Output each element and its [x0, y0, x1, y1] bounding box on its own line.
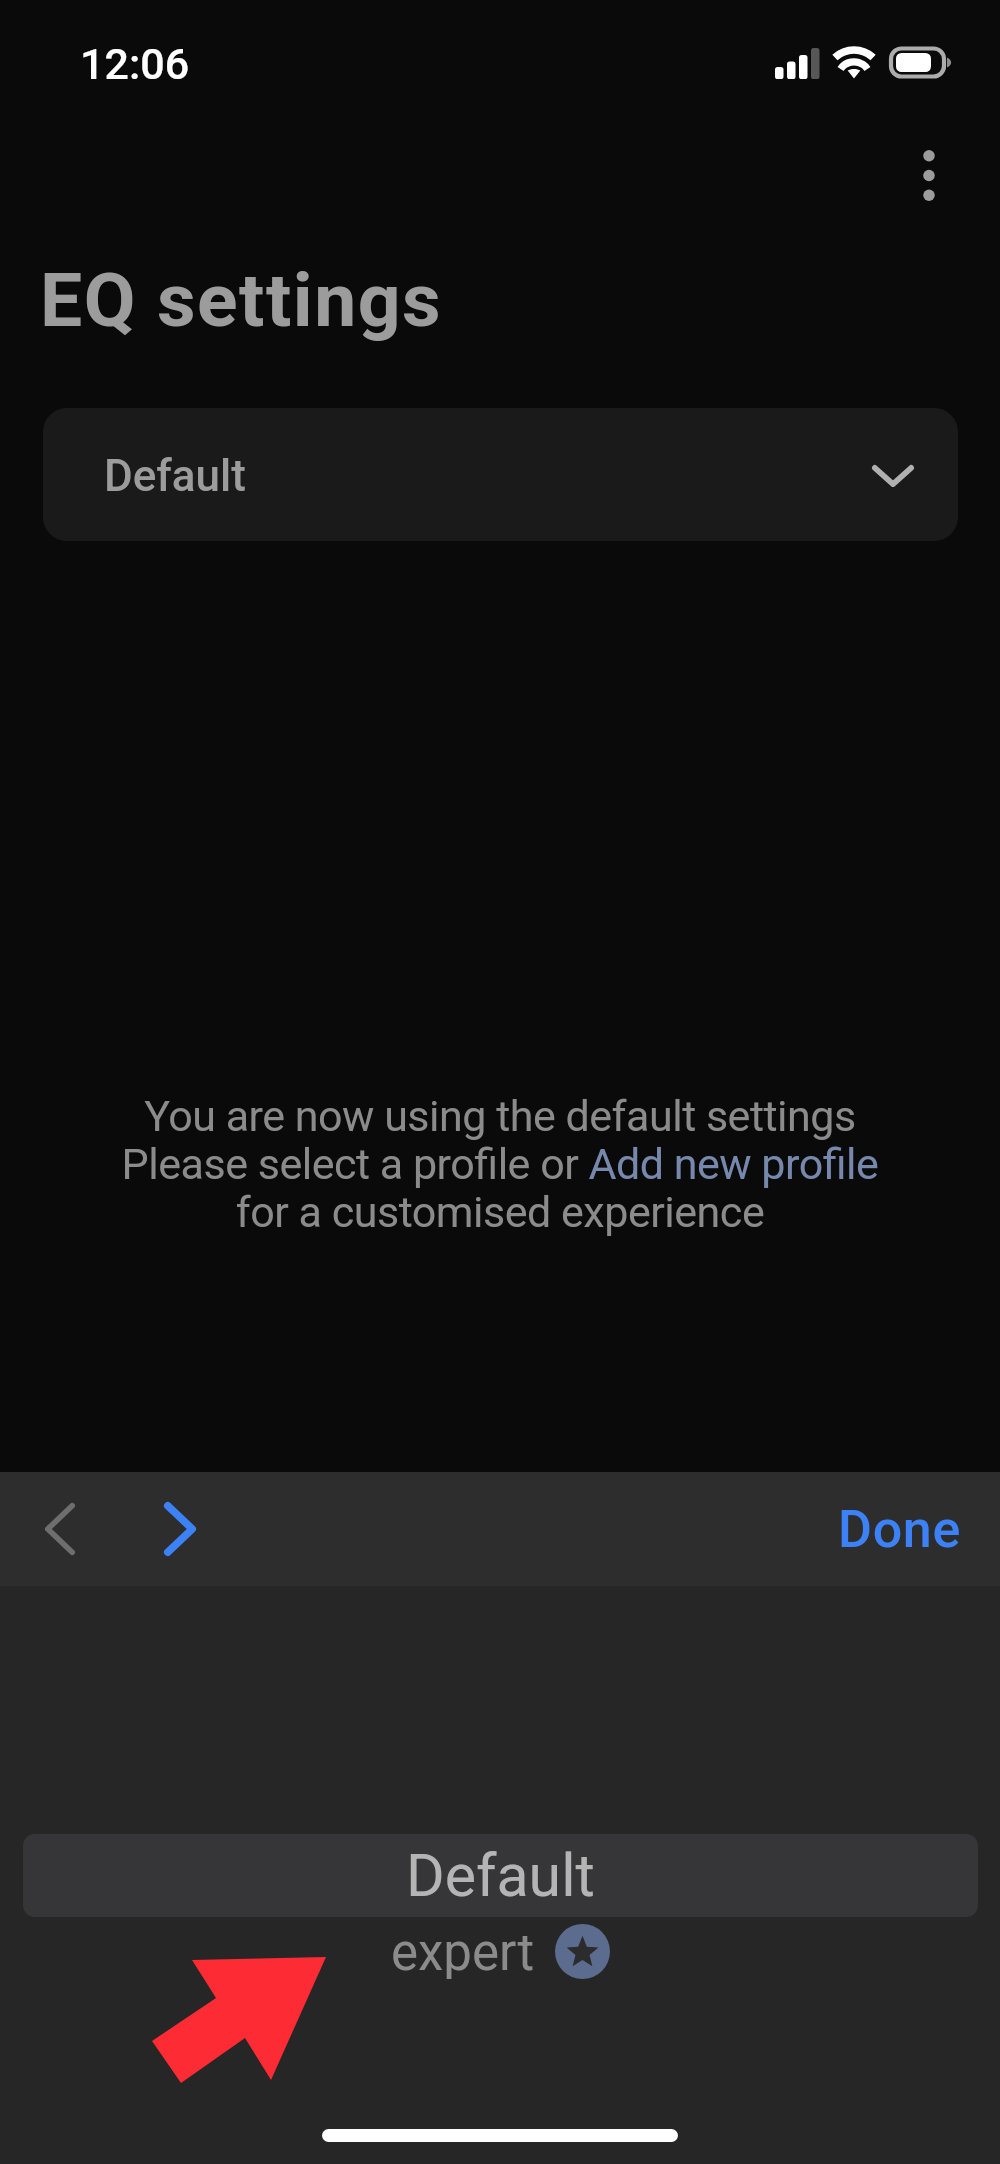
staticText: 12:06	[80, 39, 190, 89]
button[interactable]: Previous field	[16, 1485, 104, 1573]
button[interactable]: Next field	[136, 1485, 224, 1573]
staticText: EQ settings	[40, 256, 443, 344]
staticText: expert	[391, 1923, 535, 1979]
staticText: Done	[838, 1499, 962, 1560]
button[interactable]: Done	[814, 1483, 986, 1576]
button[interactable]: Add new profile	[588, 1140, 880, 1196]
staticText: Default	[104, 450, 246, 502]
button[interactable]: More options	[888, 135, 969, 216]
staticText: Default	[406, 1841, 595, 1910]
staticText: You are now using the default settings P…	[0, 1091, 1000, 1237]
button[interactable]: Default	[43, 408, 958, 541]
button[interactable]: Default	[23, 1834, 978, 1917]
